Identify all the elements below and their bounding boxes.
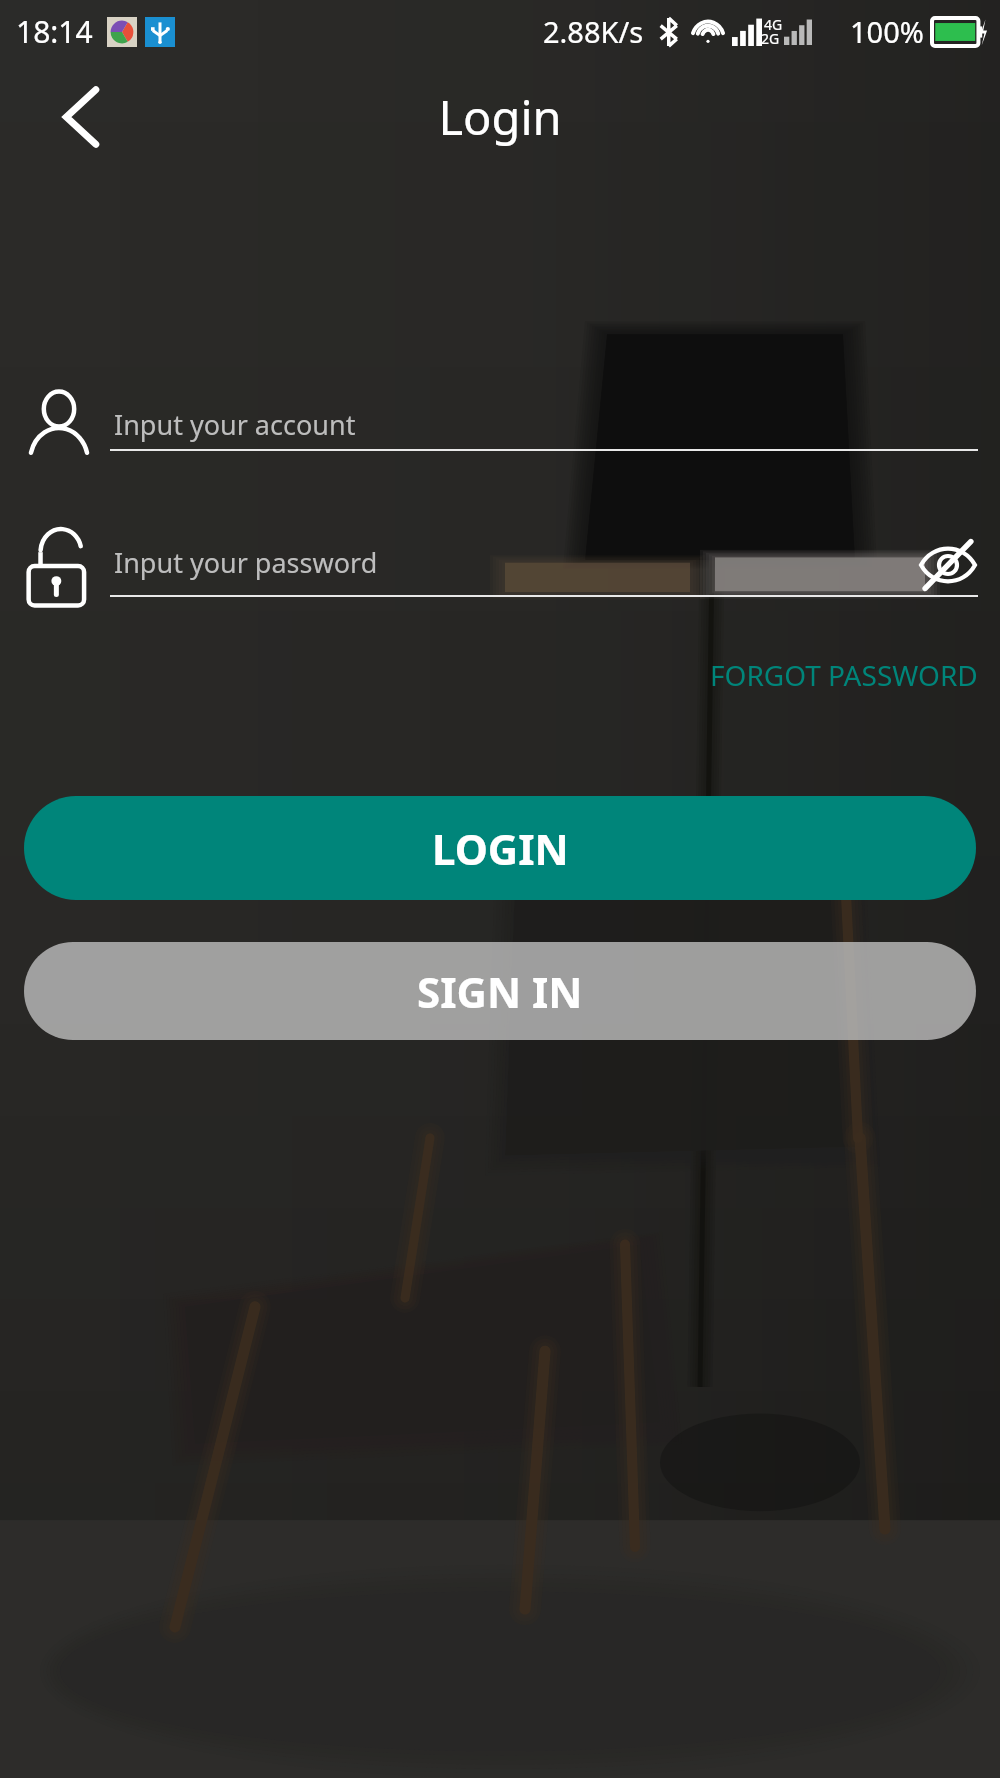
- staticText: Login: [438, 85, 562, 149]
- button[interactable]: FORGOT PASSWORD: [688, 646, 1000, 704]
- staticText: LOGIN: [432, 820, 569, 877]
- button[interactable]: Input your password: [26, 524, 978, 608]
- button[interactable]: Show password: [918, 535, 978, 595]
- staticText: 18:14: [16, 11, 93, 52]
- button[interactable]: SIGN IN: [24, 942, 976, 1040]
- staticText: Input your password: [114, 544, 918, 581]
- staticText: FORGOT PASSWORD: [710, 656, 978, 694]
- staticText: SIGN IN: [417, 963, 583, 1020]
- staticText: Input your account: [114, 406, 356, 443]
- staticText: 2G: [761, 29, 780, 48]
- staticText: 2.88K/s: [543, 12, 644, 51]
- button[interactable]: Input your account: [26, 390, 978, 466]
- button[interactable]: Back: [44, 79, 120, 155]
- staticText: 100%: [850, 12, 924, 51]
- staticText: 4G: [764, 15, 783, 34]
- button[interactable]: LOGIN: [24, 796, 976, 900]
